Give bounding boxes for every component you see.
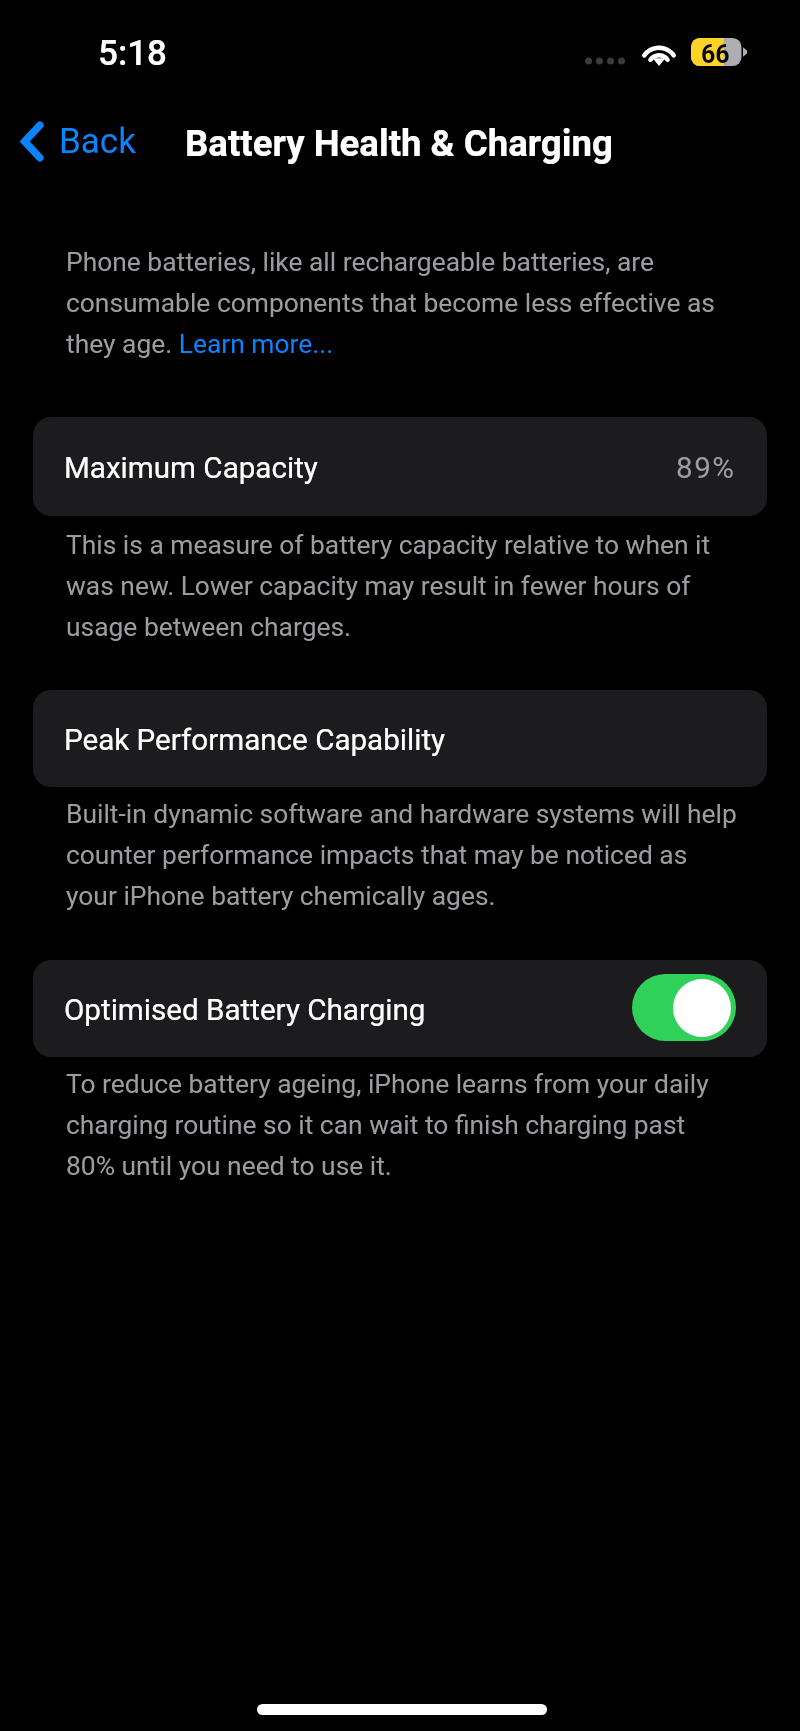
staticText: was new. Lower capacity may result in fe… <box>66 571 691 602</box>
staticText: To reduce battery ageing, iPhone learns … <box>66 1069 709 1100</box>
button[interactable]: Maximum Capacity <box>33 417 767 516</box>
staticText: charging routine so it can wait to finis… <box>66 1110 686 1141</box>
staticText: consumable components that become less e… <box>66 288 715 319</box>
staticText: Battery Health & Charging <box>185 122 613 165</box>
staticText: 89% <box>676 451 736 486</box>
staticText: Optimised Battery Charging <box>64 993 426 1028</box>
staticText: 66 <box>701 40 730 69</box>
button[interactable]: Back <box>0 115 154 168</box>
staticText: Built-in dynamic software and hardware s… <box>66 799 737 830</box>
staticText: 5:18 <box>98 33 167 74</box>
staticText: 80% until you need to use it. <box>66 1151 392 1182</box>
staticText: Back <box>59 121 136 162</box>
button[interactable]: Optimised Battery Charging, on <box>632 974 736 1041</box>
staticText: usage between charges. <box>66 612 352 643</box>
staticText: counter performance impacts that may be … <box>66 840 688 871</box>
staticText: your iPhone battery chemically ages. <box>66 881 496 912</box>
staticText: Maximum Capacity <box>64 451 318 486</box>
staticText: This is a measure of battery capacity re… <box>66 530 711 561</box>
staticText: they age. Learn more... <box>66 329 334 360</box>
staticText: Peak Performance Capability <box>64 723 446 758</box>
button[interactable]: Peak Performance Capability <box>33 690 767 787</box>
staticText: Phone batteries, like all rechargeable b… <box>66 247 654 278</box>
